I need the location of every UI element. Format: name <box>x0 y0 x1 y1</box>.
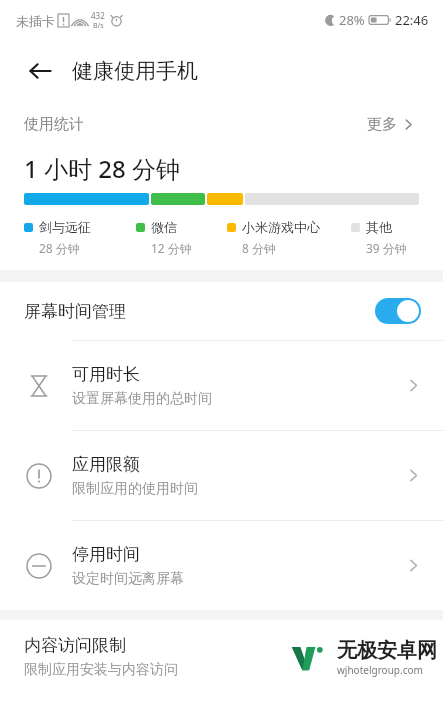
staticText: 39 分钟 <box>366 240 407 256</box>
staticText: 内容访问限制 <box>24 635 126 656</box>
button[interactable]: 应用限额 <box>0 431 443 520</box>
button[interactable]: 屏幕时间管理 <box>0 282 443 340</box>
staticText: 更多 <box>367 115 397 134</box>
button[interactable]: Back <box>22 53 58 89</box>
staticText: 未插卡 <box>16 13 55 29</box>
staticText: 28% <box>339 11 365 29</box>
staticText: 健康使用手机 <box>72 58 198 84</box>
button[interactable]: 内容访问限制 <box>0 620 443 694</box>
staticText: 应用限额 <box>72 454 140 475</box>
button[interactable]: 更多 <box>363 111 419 138</box>
staticText: 使用统计 <box>24 115 84 134</box>
staticText: 1 小时 28 分钟 <box>24 152 180 185</box>
staticText: 无极安卓网 <box>337 638 437 663</box>
staticText: 22:46 <box>395 11 429 29</box>
staticText: 剑与远征 <box>39 219 91 235</box>
staticText: wjhotelgroup.com <box>337 663 423 677</box>
staticText: 限制应用的使用时间 <box>72 480 198 498</box>
staticText: 微信 <box>151 219 177 235</box>
button[interactable]: 停用时间 <box>0 521 443 610</box>
button[interactable]: 可用时长 <box>0 341 443 430</box>
staticText: 28 分钟 <box>39 240 80 256</box>
staticText: 其他 <box>366 219 392 235</box>
staticText: 设定时间远离屏幕 <box>72 570 184 588</box>
staticText: 432 <box>91 10 105 21</box>
staticText: 停用时间 <box>72 544 140 565</box>
staticText: B/s <box>93 21 104 31</box>
staticText: 屏幕时间管理 <box>24 301 126 322</box>
staticText: 小米游戏中心 <box>242 219 320 235</box>
button[interactable]: 屏幕时间管理 开关 <box>375 298 421 324</box>
staticText: 12 分钟 <box>151 240 192 256</box>
staticText: 设置屏幕使用的总时间 <box>72 390 212 408</box>
staticText: 8 分钟 <box>242 240 276 256</box>
staticText: 可用时长 <box>72 364 140 385</box>
staticText: 限制应用安装与内容访问 <box>24 661 178 679</box>
